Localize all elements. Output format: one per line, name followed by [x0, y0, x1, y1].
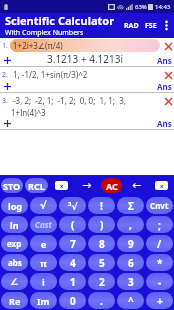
staticText: FSE [145, 21, 157, 31]
staticText: 2 [99, 275, 105, 289]
button[interactable]: 6 [117, 254, 144, 271]
staticText: i [42, 276, 45, 288]
staticText: ( [71, 218, 75, 232]
button[interactable]: 1, -1/2, 1+sin(π/3)^2 [10, 68, 160, 81]
button[interactable]: ; [146, 216, 173, 233]
button[interactable]: Add entry [2, 55, 13, 66]
button[interactable]: Re [1, 292, 28, 309]
button[interactable]: Add entry [2, 118, 13, 129]
button[interactable]: 3 [117, 273, 144, 290]
staticText: ∠ [10, 277, 19, 287]
button[interactable]: e [30, 235, 57, 252]
button[interactable]: Σ [117, 197, 144, 214]
staticText: 7 [70, 237, 76, 251]
staticText: * [157, 256, 163, 270]
staticText: Ans [157, 81, 172, 92]
button[interactable]: 1 [59, 273, 86, 290]
button[interactable]: abs [1, 254, 28, 271]
button[interactable]: Backspace left [49, 175, 74, 196]
button[interactable]: Delete entry 3. [162, 95, 174, 107]
button[interactable]: 9 [117, 235, 144, 252]
staticText: + [157, 294, 163, 308]
staticText: Σ [128, 199, 134, 213]
staticText: ³√ [68, 200, 78, 212]
button[interactable]: Im [30, 292, 57, 309]
staticText: ← [132, 179, 142, 192]
staticText: 6 [128, 256, 134, 270]
button[interactable]: exp [1, 235, 28, 252]
staticText: 8 [99, 237, 105, 251]
button[interactable]: / [146, 235, 173, 252]
button[interactable]: FSE [142, 17, 160, 35]
button[interactable]: 7 [59, 235, 86, 252]
button[interactable]: 2 [88, 273, 115, 290]
button[interactable]: 8 [88, 235, 115, 252]
button[interactable]: * [146, 254, 173, 271]
staticText: exp [7, 238, 22, 249]
button[interactable]: Move left [124, 175, 149, 196]
staticText: ) [100, 218, 104, 232]
button[interactable]: Cnvt [146, 197, 173, 214]
button[interactable]: 5 [88, 254, 115, 271]
staticText: ! [100, 199, 103, 213]
button[interactable]: ) [88, 216, 115, 233]
staticText: √ [40, 200, 47, 212]
staticText: 1. [2, 41, 8, 51]
staticText: 14:43 [155, 3, 171, 11]
button[interactable]: Delete entry 2. [162, 69, 174, 81]
staticText: / [157, 237, 162, 251]
button[interactable]: Move right [74, 175, 99, 196]
button[interactable]: Backspace [149, 175, 174, 196]
staticText: Re [9, 295, 21, 307]
button[interactable]: ³√ [59, 197, 86, 214]
button[interactable]: . [88, 292, 115, 309]
staticText: Cnvt [150, 200, 169, 211]
button[interactable]: ∠ [1, 273, 28, 290]
button[interactable]: ! [88, 197, 115, 214]
button[interactable]: - [146, 273, 173, 290]
staticText: 3 [128, 275, 134, 289]
staticText: log [8, 200, 22, 212]
button[interactable]: + [146, 292, 173, 309]
button[interactable]: Cnst [30, 216, 57, 233]
button[interactable]: ( [59, 216, 86, 233]
staticText: 2. [2, 70, 8, 80]
staticText: AC [106, 180, 118, 192]
staticText: RCL [28, 180, 45, 192]
staticText: STO [3, 180, 21, 192]
staticText: 0 [70, 294, 76, 308]
staticText: RAD [124, 21, 139, 31]
staticText: 5 [99, 256, 105, 270]
button[interactable]: ln [1, 216, 28, 233]
staticText: , [129, 218, 132, 232]
staticText: x [160, 182, 164, 190]
button[interactable]: STO [1, 178, 23, 193]
button[interactable]: √ [30, 197, 57, 214]
staticText: Scientific Calculator [5, 13, 115, 28]
button[interactable]: 4 [59, 254, 86, 271]
button[interactable]: All clear [99, 175, 124, 196]
staticText: 1+2i+3∠(π/4) [13, 40, 63, 51]
staticText: -3, 2; -2, 1; -1, 2; 0, 0; 1, 1; 3, [13, 95, 126, 106]
button[interactable]: RAD [121, 17, 142, 35]
staticText: - [158, 275, 162, 289]
button[interactable]: , [117, 216, 144, 233]
staticText: 1 [70, 275, 76, 289]
button[interactable]: i [30, 273, 57, 290]
button[interactable]: -3, 2; -2, 1; -1, 2; 0, 0; 1, 1; 3, [10, 94, 160, 107]
staticText: → [82, 179, 92, 192]
button[interactable]: RCL [25, 178, 48, 193]
button[interactable]: log [1, 197, 28, 214]
button[interactable]: Delete entry 1. [162, 40, 174, 52]
button[interactable]: π [30, 254, 57, 271]
staticText: ; [158, 218, 161, 232]
button[interactable]: Add entry [2, 81, 13, 92]
staticText: With Complex Numbers [5, 28, 84, 38]
button[interactable]: More options [160, 13, 172, 38]
button[interactable]: 0 [59, 292, 86, 309]
button[interactable]: 1+2i+3∠(π/4) [10, 39, 160, 52]
staticText: 3.1213 + 4.1213i [47, 52, 124, 66]
button[interactable]: ^ [117, 292, 144, 309]
staticText: Im [37, 295, 50, 307]
staticText: Ans [157, 55, 172, 66]
